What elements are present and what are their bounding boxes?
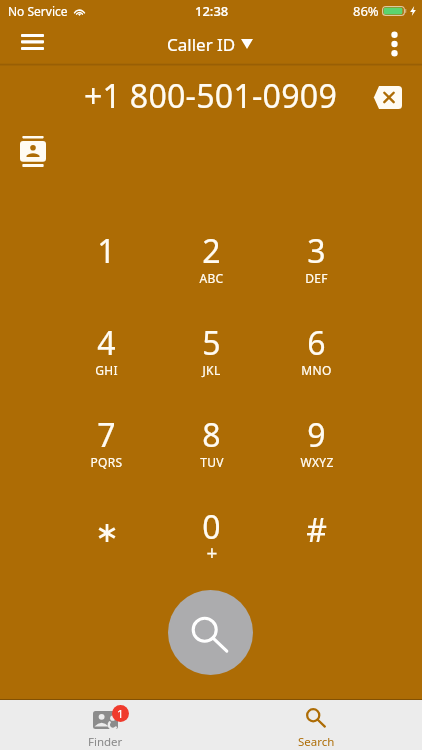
- staticText: 1: [97, 229, 116, 273]
- button[interactable]: 0: [159, 489, 264, 581]
- staticText: TUV: [200, 454, 224, 470]
- button[interactable]: 7: [54, 397, 159, 489]
- staticText: 86%: [353, 2, 379, 20]
- button[interactable]: #: [264, 489, 369, 581]
- staticText: ABC: [199, 270, 224, 286]
- button[interactable]: Contacts: [8, 129, 58, 173]
- staticText: MNO: [301, 362, 332, 378]
- staticText: JKL: [202, 362, 221, 378]
- button[interactable]: More options: [383, 22, 405, 66]
- staticText: Search: [298, 734, 335, 750]
- button[interactable]: 4: [54, 305, 159, 397]
- staticText: +: [206, 540, 218, 566]
- button[interactable]: [54, 489, 159, 581]
- button[interactable]: Caller ID: [167, 33, 253, 56]
- staticText: Caller ID: [167, 33, 236, 56]
- staticText: DEF: [305, 270, 328, 286]
- button[interactable]: 1: [0, 700, 211, 750]
- button[interactable]: 2: [159, 213, 264, 305]
- staticText: No Service: [8, 3, 68, 19]
- button[interactable]: 8: [159, 397, 264, 489]
- staticText: 0: [202, 505, 221, 549]
- button[interactable]: 3: [264, 213, 369, 305]
- staticText: 4: [97, 321, 116, 365]
- staticText: 8: [202, 413, 221, 457]
- staticText: 7: [97, 413, 116, 457]
- staticText: 9: [307, 413, 326, 457]
- button[interactable]: 5: [159, 305, 264, 397]
- staticText: 12:38: [195, 2, 229, 20]
- button[interactable]: Backspace: [363, 76, 411, 118]
- button[interactable]: Search: [168, 590, 253, 675]
- staticText: 2: [202, 229, 221, 273]
- staticText: WXYZ: [300, 454, 334, 470]
- staticText: 1: [117, 706, 124, 722]
- staticText: +1 800-501-0909: [84, 74, 338, 118]
- staticText: 5: [202, 321, 221, 365]
- button[interactable]: 1: [54, 213, 159, 305]
- staticText: PQRS: [90, 454, 123, 470]
- button[interactable]: Search: [211, 700, 422, 750]
- staticText: 3: [307, 229, 326, 273]
- button[interactable]: 9: [264, 397, 369, 489]
- staticText: #: [306, 508, 327, 552]
- staticText: Finder: [88, 734, 123, 750]
- button[interactable]: Menu: [6, 22, 58, 66]
- staticText: GHI: [95, 362, 118, 378]
- staticText: 6: [307, 321, 326, 365]
- button[interactable]: 6: [264, 305, 369, 397]
